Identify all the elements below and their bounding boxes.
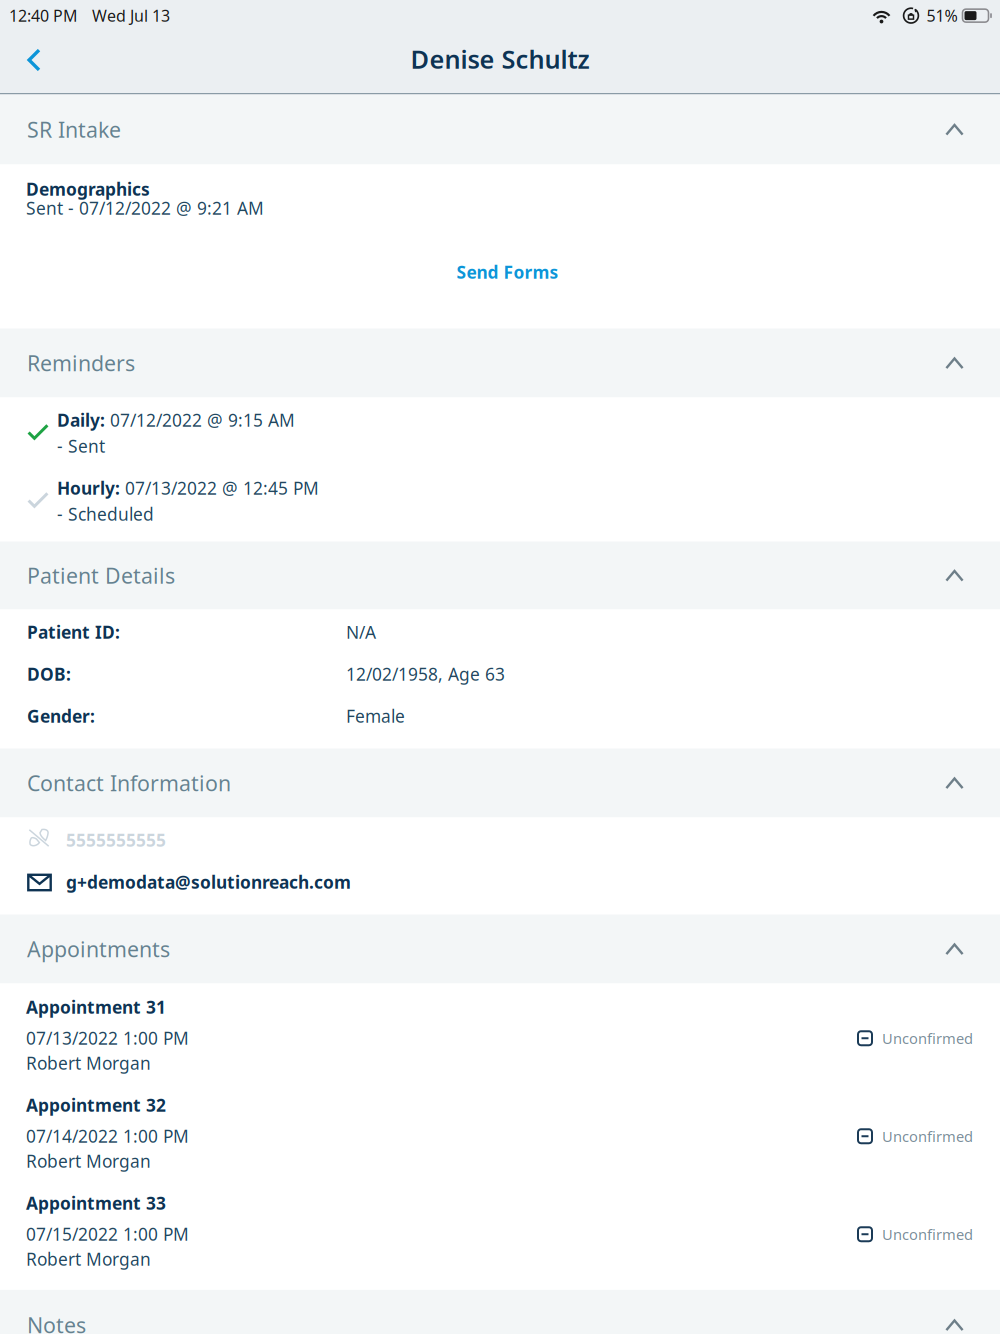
staticText: Daily: [57, 408, 105, 431]
staticText: Robert Morgan [26, 1051, 151, 1074]
staticText: 12/02/1958, Age 63 [346, 662, 505, 685]
button[interactable]: Appointment 32 [0, 1093, 1000, 1183]
staticText: Robert Morgan [26, 1149, 151, 1172]
staticText: Female [346, 704, 405, 727]
staticText: 07/12/2022 @ 9:15 AM [105, 408, 295, 431]
staticText: Unconfirmed [882, 1126, 973, 1146]
button[interactable]: Notes [0, 1291, 1000, 1334]
staticText: - Scheduled [57, 503, 154, 526]
staticText: 07/13/2022 @ 12:45 PM [120, 476, 319, 499]
staticText: Robert Morgan [26, 1247, 151, 1270]
button[interactable]: SR Intake [0, 94, 1000, 164]
staticText: Patient Details [27, 561, 175, 590]
button[interactable]: Patient Details [0, 541, 1000, 609]
staticText: Wed Jul 13 [92, 5, 170, 26]
staticText: Appointment 33 [26, 1191, 166, 1214]
staticText: Patient ID: [27, 620, 120, 643]
staticText: Reminders [27, 349, 135, 377]
staticText: Contact Information [27, 769, 231, 797]
button[interactable]: Back [0, 35, 63, 81]
button[interactable]: g+demodata@solutionreach.com [27, 869, 1000, 893]
button[interactable]: Appointment 33 [0, 1191, 1000, 1281]
button[interactable]: Appointments [0, 914, 1000, 983]
staticText: 51% [926, 5, 957, 26]
staticText: Notes [27, 1311, 86, 1334]
staticText: Appointment 32 [26, 1093, 166, 1116]
staticText: 07/15/2022 1:00 PM [26, 1222, 189, 1245]
staticText: Demographics [26, 177, 150, 200]
button[interactable]: Send Forms [438, 251, 576, 292]
staticText: 5555555555 [66, 828, 166, 851]
button[interactable]: Contact Information [0, 748, 1000, 817]
staticText: Appointments [27, 935, 170, 963]
staticText: - Sent [57, 434, 105, 457]
staticText: Send Forms [456, 260, 558, 283]
staticText: Unconfirmed [882, 1028, 973, 1048]
staticText: 12:40 PM [9, 5, 78, 26]
staticText: N/A [346, 620, 376, 643]
button[interactable]: Appointment 31 [0, 995, 1000, 1085]
staticText: Sent - 07/12/2022 @ 9:21 AM [26, 196, 264, 219]
staticText: Gender: [27, 704, 95, 727]
staticText: Hourly: [57, 476, 120, 499]
staticText: SR Intake [27, 115, 121, 144]
staticText: 07/13/2022 1:00 PM [26, 1026, 189, 1049]
button[interactable]: Reminders [0, 328, 1000, 397]
staticText: Denise Schultz [410, 42, 589, 76]
staticText: g+demodata@solutionreach.com [66, 870, 351, 893]
staticText: Appointment 31 [26, 995, 166, 1018]
staticText: Unconfirmed [882, 1224, 973, 1244]
staticText: 07/14/2022 1:00 PM [26, 1124, 189, 1147]
staticText: DOB: [27, 662, 71, 685]
